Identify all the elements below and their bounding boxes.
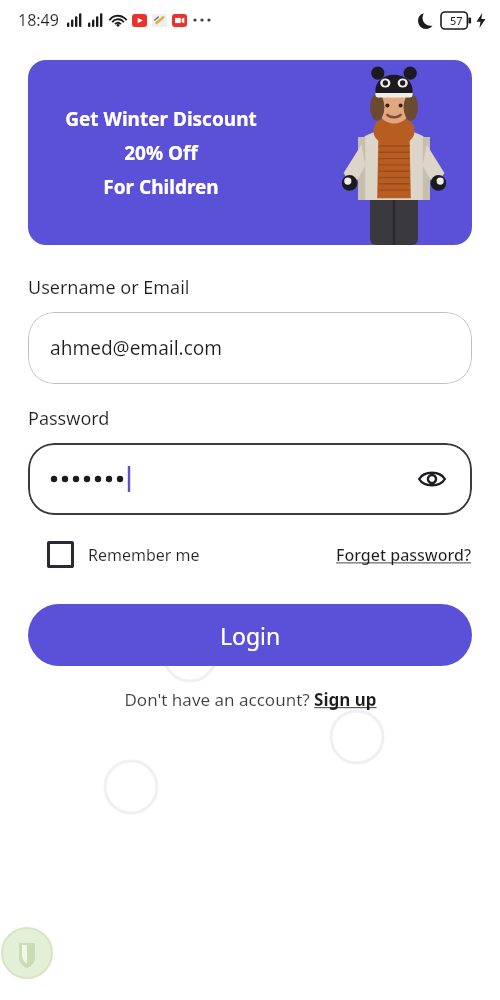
staticText: Forget password? xyxy=(336,544,472,566)
staticText: Don't have an account? Sign up xyxy=(124,688,377,711)
button[interactable]: Show password xyxy=(410,457,454,501)
staticText: Remember me xyxy=(88,544,200,566)
button[interactable]: Show password xyxy=(28,443,472,515)
button[interactable]: Don't have an account? Sign up xyxy=(124,688,377,711)
button[interactable]: Get Winter Discount xyxy=(28,60,472,245)
staticText: For Children xyxy=(103,174,219,200)
staticText: 57 xyxy=(450,13,463,28)
staticText: Get Winter Discount xyxy=(65,106,257,132)
staticText: 20% Off xyxy=(124,140,198,166)
staticText: ahmed@email.com xyxy=(50,335,223,361)
staticText: Password xyxy=(28,406,110,431)
button[interactable]: Forget password? xyxy=(336,544,472,566)
staticText: 18:49 xyxy=(18,9,59,31)
staticText: Login xyxy=(220,620,281,651)
button[interactable]: Remember me xyxy=(28,541,200,568)
button[interactable]: Login xyxy=(28,604,472,666)
staticText: Username or Email xyxy=(28,275,190,300)
button[interactable]: ahmed@email.com xyxy=(28,312,472,384)
